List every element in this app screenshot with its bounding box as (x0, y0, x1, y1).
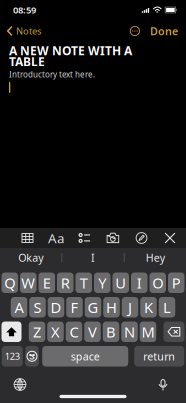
button[interactable]: F (66, 297, 83, 317)
staticText: V (88, 322, 97, 341)
button[interactable]: Okay (0, 248, 61, 267)
button[interactable]: Hey (124, 248, 186, 267)
staticText: I (91, 250, 95, 265)
button[interactable]: Dictation (151, 373, 175, 395)
staticText: X (51, 322, 60, 341)
button[interactable]: Emoji (25, 346, 39, 366)
staticText: O (152, 273, 163, 292)
staticText: Done (150, 24, 178, 38)
button[interactable]: Aa (46, 228, 66, 248)
staticText: return (143, 349, 175, 363)
button[interactable]: Checklist (74, 228, 94, 248)
button[interactable]: Q (1, 272, 18, 293)
staticText: Aa (48, 229, 64, 247)
staticText: S (33, 297, 41, 317)
staticText: I (137, 273, 142, 292)
button[interactable]: B (103, 321, 119, 342)
button[interactable]: J (122, 297, 138, 317)
staticText: G (87, 297, 98, 317)
staticText: N (124, 322, 135, 341)
button[interactable]: C (66, 321, 82, 342)
button[interactable]: Markup (131, 228, 151, 248)
staticText: U (115, 273, 126, 292)
staticText: K (144, 297, 153, 317)
button[interactable]: Z (29, 321, 45, 342)
button[interactable]: I (131, 272, 147, 293)
button[interactable]: P (168, 272, 184, 293)
button[interactable]: Next keyboard (8, 373, 32, 395)
button[interactable]: Notes (6, 20, 47, 42)
staticText: C (69, 322, 78, 341)
button[interactable]: Camera (103, 228, 123, 248)
button[interactable]: U (112, 272, 129, 293)
button[interactable]: H (103, 297, 120, 317)
staticText: Y (98, 273, 106, 292)
button[interactable]: A (11, 297, 27, 317)
staticText: T (80, 273, 88, 292)
staticText: A (14, 297, 23, 317)
staticText: H (106, 297, 117, 317)
staticText: 123 (5, 350, 20, 362)
staticText: P (172, 273, 181, 292)
staticText: Q (4, 273, 15, 292)
button[interactable]: Done (144, 19, 178, 43)
button[interactable]: O (149, 272, 166, 293)
staticText: Notes (16, 25, 41, 37)
button[interactable]: return (134, 346, 184, 366)
staticText: Z (33, 322, 41, 341)
staticText: M (141, 322, 154, 341)
staticText: space (71, 349, 100, 363)
staticText: TABLE (9, 53, 45, 69)
button[interactable]: Table (17, 228, 37, 248)
button[interactable]: G (85, 297, 101, 317)
button[interactable]: More (115, 21, 144, 41)
staticText: Hey (146, 250, 165, 265)
button[interactable]: Y (94, 272, 110, 293)
staticText: L (163, 297, 171, 317)
staticText: B (106, 322, 116, 341)
staticText: A NEW NOTE WITH A (9, 42, 132, 58)
staticText: J (128, 297, 132, 317)
button[interactable]: T (75, 272, 92, 293)
button[interactable]: X (47, 321, 64, 342)
button[interactable]: R (57, 272, 73, 293)
staticText: E (43, 273, 51, 292)
button[interactable]: 123 (2, 346, 23, 366)
button[interactable]: Hide keyboard (160, 228, 180, 248)
staticText: F (70, 297, 78, 317)
button[interactable]: L (159, 297, 175, 317)
button[interactable]: Shift (1, 321, 21, 342)
button[interactable]: Delete (163, 321, 184, 342)
button[interactable]: K (140, 297, 157, 317)
staticText: R (61, 273, 70, 292)
staticText: Introductory text here. (9, 69, 95, 80)
button[interactable]: M (140, 321, 156, 342)
button[interactable]: N (121, 321, 138, 342)
staticText: Okay (18, 250, 43, 265)
button[interactable]: S (29, 297, 46, 317)
staticText: D (50, 297, 61, 317)
button[interactable]: D (48, 297, 64, 317)
button[interactable]: V (84, 321, 101, 342)
staticText: W (21, 273, 35, 292)
button[interactable]: I (62, 248, 124, 267)
staticText: 08:59 (13, 4, 36, 16)
button[interactable]: W (20, 272, 36, 293)
button[interactable]: E (38, 272, 55, 293)
button[interactable]: space (42, 346, 128, 366)
